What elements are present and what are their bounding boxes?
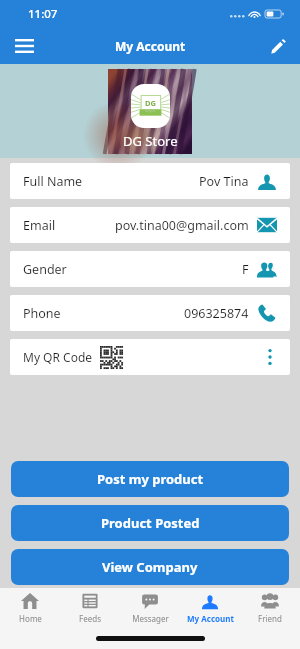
staticText: acrylic bbox=[145, 108, 156, 113]
button[interactable]: Gender bbox=[10, 251, 290, 287]
button[interactable]: Open navigation menu bbox=[0, 28, 48, 64]
staticText: Phone bbox=[23, 305, 61, 322]
staticText: DG Store bbox=[123, 132, 178, 150]
staticText: Feeds bbox=[79, 613, 101, 624]
button[interactable]: Edit profile bbox=[256, 28, 300, 64]
staticText: Gender bbox=[23, 261, 67, 278]
button[interactable]: View Company bbox=[11, 549, 289, 585]
button[interactable]: Product Posted bbox=[11, 505, 289, 541]
staticText: Acrylic bbox=[144, 115, 158, 121]
staticText: Messager bbox=[132, 613, 169, 624]
staticText: 096325874 bbox=[184, 305, 249, 322]
button[interactable]: Friend bbox=[240, 588, 300, 624]
button[interactable]: Phone bbox=[10, 295, 290, 331]
button[interactable]: Messager bbox=[120, 588, 180, 624]
button[interactable]: My Account bbox=[180, 588, 240, 624]
staticText: View Company bbox=[102, 558, 198, 576]
button[interactable]: Home bbox=[0, 588, 60, 624]
staticText: My Account bbox=[115, 38, 186, 54]
staticText: F bbox=[242, 261, 249, 278]
staticText: DG bbox=[145, 98, 156, 108]
button[interactable]: Feeds bbox=[60, 588, 120, 624]
staticText: Post my product bbox=[97, 470, 204, 488]
staticText: My QR Code bbox=[23, 349, 93, 365]
button[interactable]: More options bbox=[263, 347, 277, 367]
staticText: 11:07 bbox=[28, 6, 58, 22]
staticText: Friend bbox=[258, 613, 282, 624]
staticText: Pov Tina bbox=[199, 173, 249, 190]
staticText: Home bbox=[19, 613, 42, 624]
button[interactable]: Full Name bbox=[10, 163, 290, 199]
staticText: pov.tina00@gmail.com bbox=[115, 217, 249, 234]
staticText: My Account bbox=[187, 613, 234, 624]
button[interactable]: My QR Code bbox=[10, 339, 290, 375]
staticText: Full Name bbox=[23, 173, 83, 190]
button[interactable]: Email bbox=[10, 207, 290, 243]
staticText: Email bbox=[23, 217, 56, 234]
button[interactable]: Post my product bbox=[11, 461, 289, 497]
staticText: Product Posted bbox=[101, 514, 200, 532]
